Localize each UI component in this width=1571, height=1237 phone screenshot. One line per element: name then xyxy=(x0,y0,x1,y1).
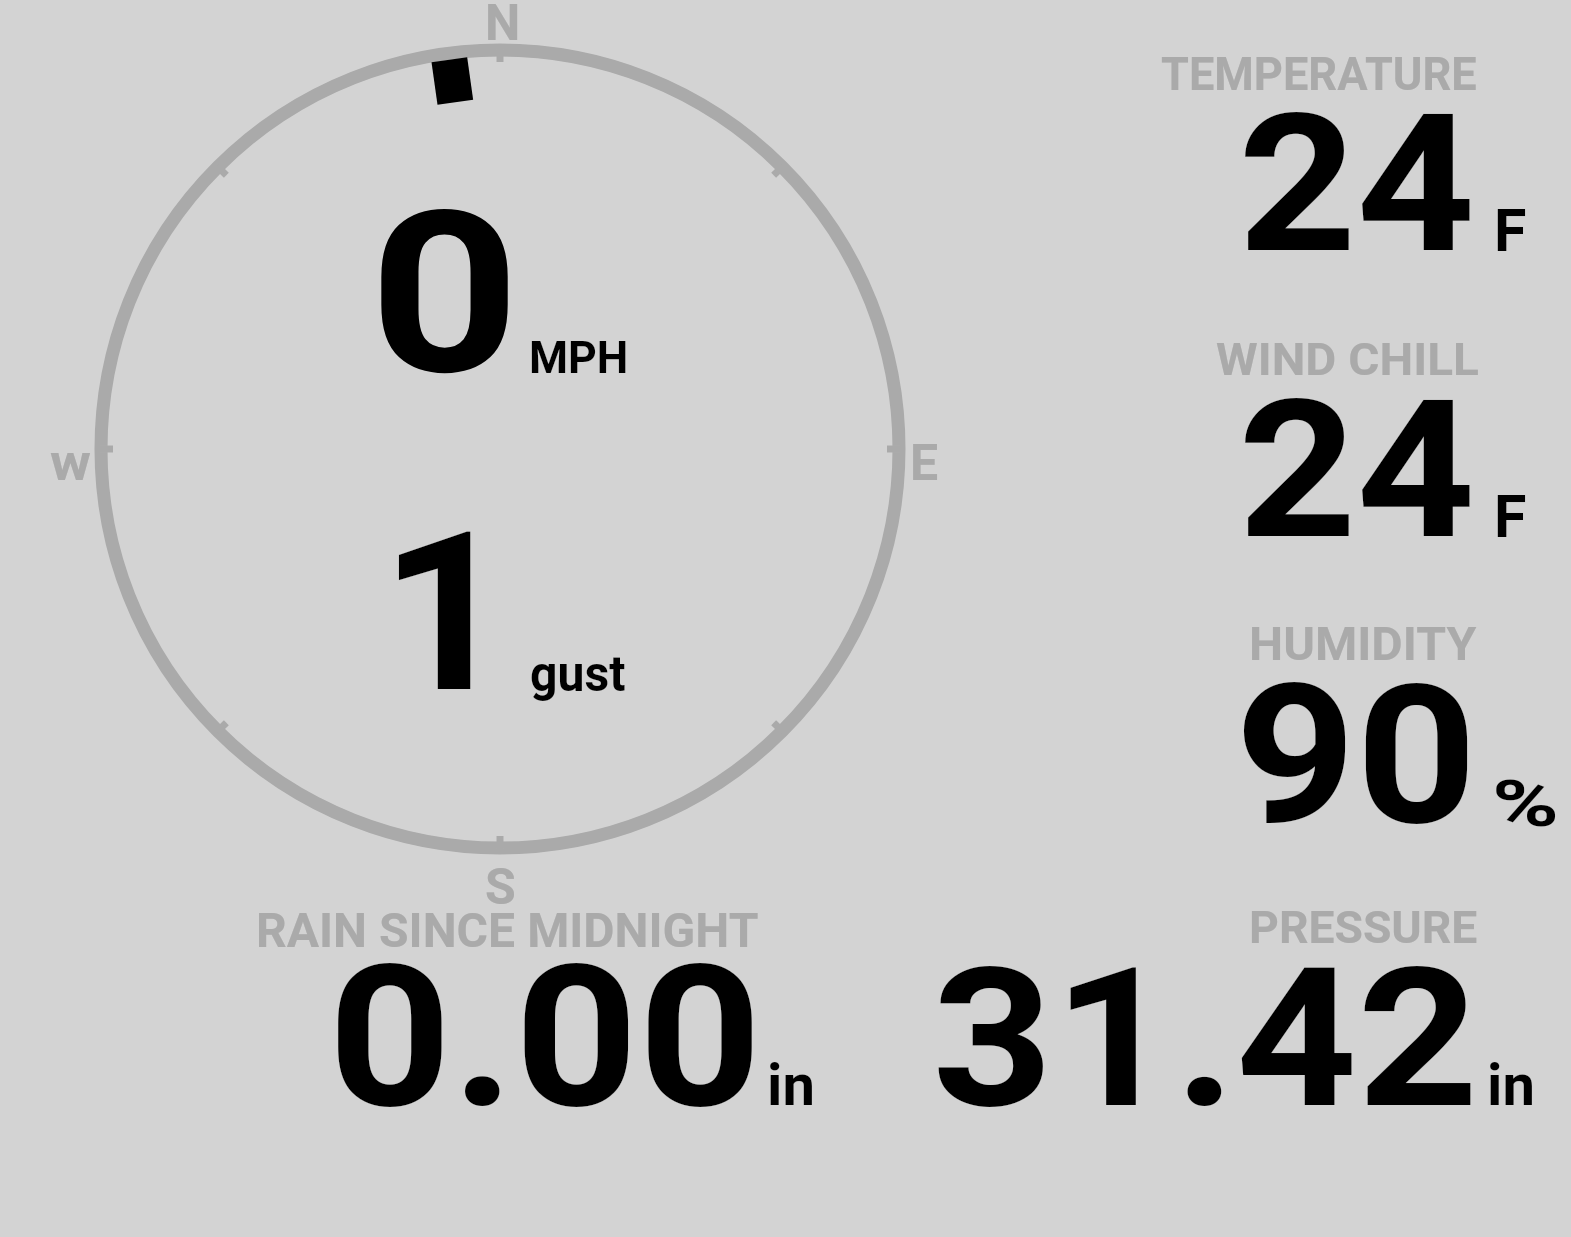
button[interactable]: Humidity 90 percent xyxy=(1150,615,1570,840)
staticText: 24 xyxy=(1238,73,1476,297)
staticText: TEMPERATURE xyxy=(1161,47,1477,101)
staticText: E xyxy=(910,434,939,493)
button[interactable]: Wind direction dial, 0 miles per hour, g… xyxy=(96,45,904,853)
staticText: MPH xyxy=(529,332,629,384)
staticText: S xyxy=(485,858,516,917)
staticText: in xyxy=(767,1051,815,1119)
staticText: 24 xyxy=(1238,359,1476,583)
staticText: WIND CHILL xyxy=(1216,334,1479,386)
staticText: 31.42 xyxy=(932,926,1479,1152)
staticText: HUMIDITY xyxy=(1249,616,1477,671)
staticText: PRESSURE xyxy=(1249,902,1478,954)
staticText: RAIN SINCE MIDNIGHT xyxy=(256,902,758,959)
staticText: in xyxy=(1487,1051,1535,1119)
staticText: F xyxy=(1494,196,1527,265)
staticText: N xyxy=(485,0,521,53)
staticText: % xyxy=(1492,766,1559,842)
button[interactable]: Wind chill 24 F xyxy=(1150,330,1570,555)
staticText: gust xyxy=(530,644,626,703)
staticText: 1 xyxy=(380,484,513,743)
button[interactable]: Rain since midnight 0.00 inches xyxy=(250,900,820,1115)
button[interactable]: Pressure 31.42 inches xyxy=(900,900,1540,1115)
staticText: 0.00 xyxy=(328,923,762,1153)
button[interactable]: Temperature 24 F xyxy=(1150,45,1570,270)
staticText: 90 xyxy=(1235,643,1478,869)
staticText: F xyxy=(1494,482,1527,551)
staticText: w xyxy=(50,434,91,493)
staticText: 0 xyxy=(369,163,520,426)
